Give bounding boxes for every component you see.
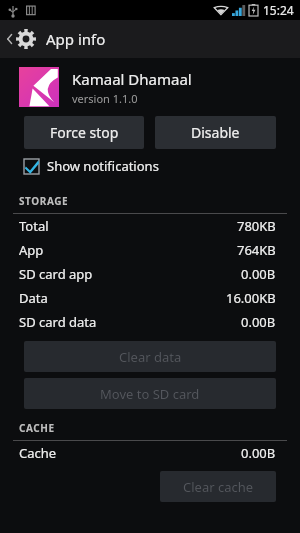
staticText: STORAGE bbox=[19, 194, 69, 208]
button[interactable]: Move to SD card bbox=[24, 378, 276, 409]
button[interactable]: Disable bbox=[155, 116, 276, 149]
button[interactable]: Force stop bbox=[24, 116, 144, 149]
staticText: Data bbox=[19, 289, 48, 307]
staticText: Force stop bbox=[50, 123, 119, 142]
staticText: Clear data bbox=[119, 348, 182, 366]
staticText: Clear cache bbox=[183, 478, 254, 496]
staticText: SD card app bbox=[19, 265, 93, 283]
button[interactable]: Navigate up bbox=[0, 20, 300, 58]
button[interactable]: Total bbox=[19, 214, 276, 238]
button[interactable]: Data bbox=[19, 286, 276, 310]
staticText: version 1.1.0 bbox=[72, 91, 138, 106]
button[interactable]: App bbox=[19, 238, 276, 262]
staticText: Show notifications bbox=[47, 157, 159, 175]
staticText: Cache bbox=[19, 444, 57, 462]
staticText: Kamaal Dhamaal bbox=[72, 69, 192, 89]
staticText: 0.00B bbox=[241, 313, 276, 331]
staticText: Disable bbox=[191, 123, 240, 142]
button[interactable]: Clear data bbox=[24, 341, 276, 372]
staticText: CACHE bbox=[19, 421, 55, 435]
staticText: Total bbox=[19, 217, 49, 235]
staticText: 0.00B bbox=[241, 265, 276, 283]
button[interactable]: Show notifications bbox=[24, 149, 300, 183]
staticText: 780KB bbox=[237, 217, 276, 235]
staticText: 0.00B bbox=[241, 444, 276, 462]
staticText: App bbox=[19, 241, 44, 259]
button[interactable]: SD card data bbox=[19, 310, 276, 334]
staticText: App info bbox=[46, 29, 106, 49]
staticText: 764KB bbox=[237, 241, 276, 259]
staticText: 15:24 bbox=[263, 2, 294, 18]
button[interactable]: SD card app bbox=[19, 262, 276, 286]
staticText: Move to SD card bbox=[100, 385, 200, 403]
button[interactable]: Cache bbox=[19, 441, 276, 465]
staticText: 16.00KB bbox=[226, 289, 276, 307]
staticText: SD card data bbox=[19, 313, 97, 331]
button[interactable]: Clear cache bbox=[160, 471, 276, 502]
